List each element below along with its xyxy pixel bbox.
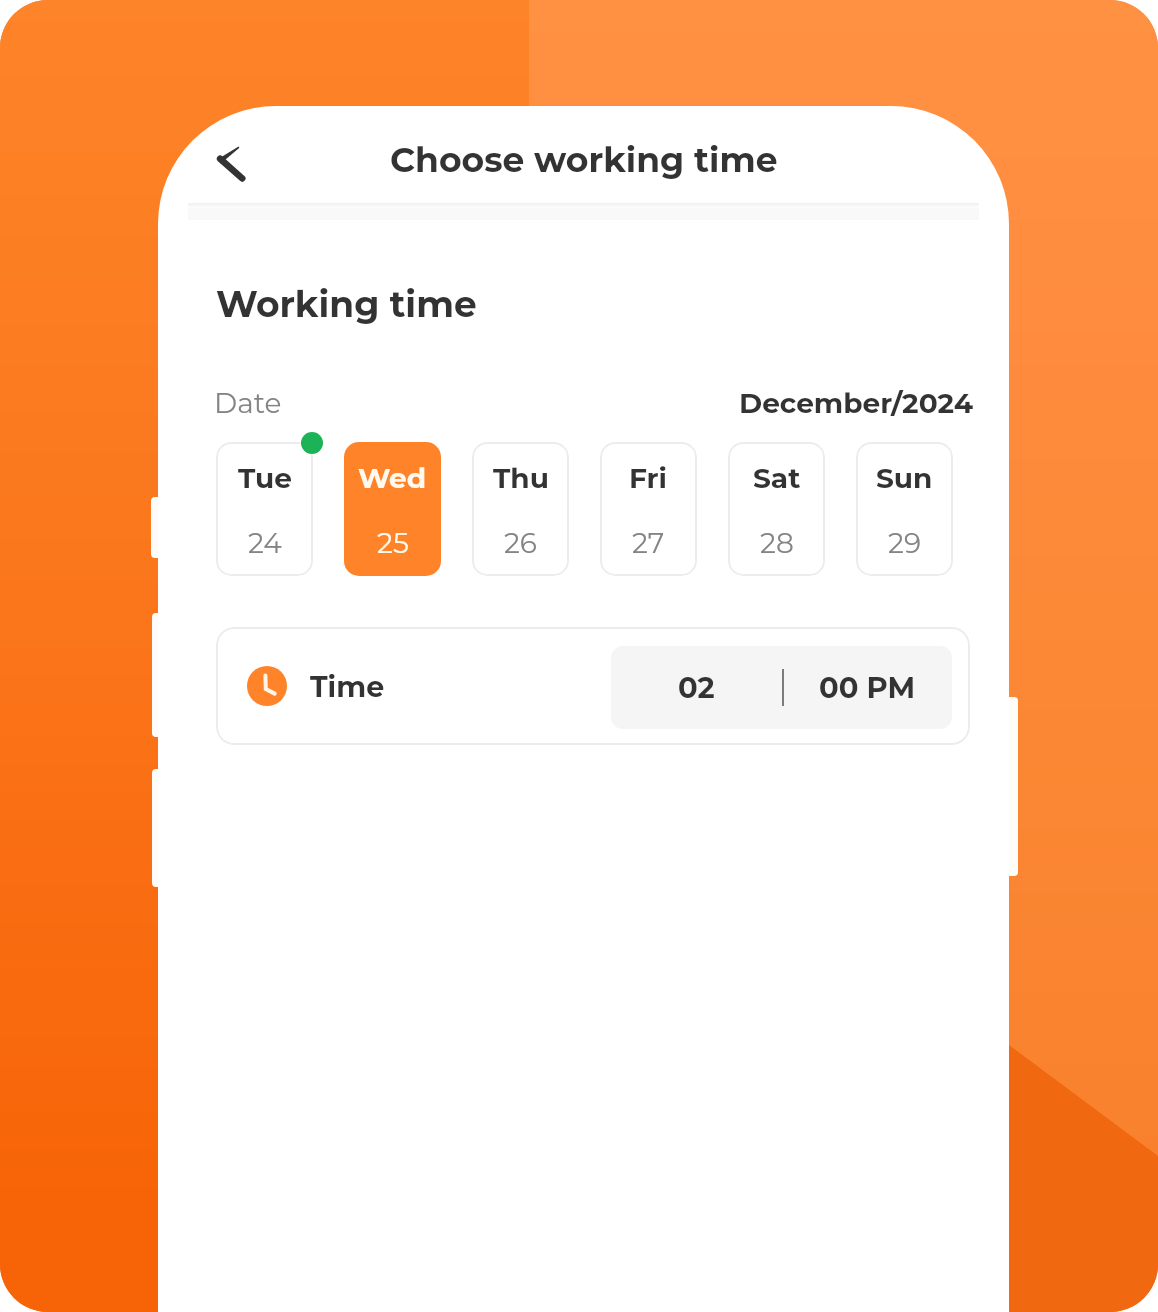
button[interactable]: Tue [216,442,313,576]
staticText: Choose working time [390,139,778,181]
staticText: Date [214,386,282,420]
staticText: 25 [377,526,409,560]
staticText: 02 [678,670,715,705]
staticText: Wed [358,461,427,495]
button[interactable]: Sun [856,442,953,576]
staticText: Sun [876,461,933,495]
staticText: 00 PM [819,670,916,705]
staticText: Thu [493,461,549,495]
staticText: 29 [888,526,921,560]
button[interactable]: Wed [344,442,441,576]
staticText: 24 [248,526,282,560]
button[interactable]: Fri [600,442,697,576]
button[interactable]: Thu [472,442,569,576]
button[interactable]: Time [216,627,970,745]
button[interactable]: Back [196,137,244,185]
staticText: 28 [760,526,794,560]
staticText: December/2024 [739,386,974,420]
button[interactable]: Sat [728,442,825,576]
staticText: Sat [753,461,801,495]
staticText: 26 [504,526,537,560]
staticText: 27 [632,526,665,560]
staticText: Time [310,669,385,704]
staticText: Working time [216,282,477,326]
staticText: Tue [238,461,292,495]
staticText: Fri [629,461,668,495]
